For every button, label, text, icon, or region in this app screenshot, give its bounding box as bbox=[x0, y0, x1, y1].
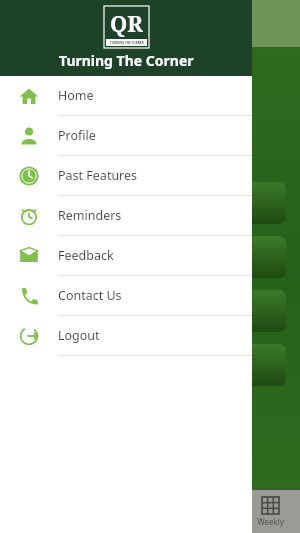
staticText: QR bbox=[110, 8, 143, 38]
staticText: Home bbox=[58, 87, 94, 104]
staticText: Logout bbox=[58, 327, 100, 344]
button[interactable] bbox=[14, 344, 286, 386]
staticText: Past Features bbox=[58, 167, 138, 184]
staticText: Reminders bbox=[58, 207, 122, 224]
staticText: Turning The Corner bbox=[59, 51, 194, 70]
button[interactable] bbox=[14, 290, 286, 332]
button[interactable] bbox=[14, 182, 286, 224]
staticText: Weekly bbox=[257, 516, 284, 527]
staticText: TURNING THE CORNER bbox=[110, 41, 144, 45]
button[interactable]: Contact Us bbox=[0, 276, 252, 316]
other: Weekly bbox=[262, 497, 279, 514]
button[interactable]: Feedback bbox=[0, 236, 252, 276]
button[interactable]: Weekly bbox=[240, 490, 300, 533]
button[interactable]: Logout bbox=[0, 316, 252, 356]
button[interactable]: Home bbox=[0, 76, 252, 116]
staticText: Contact Us bbox=[58, 287, 122, 304]
button[interactable]: Reminders bbox=[0, 196, 252, 236]
button[interactable]: Past Features bbox=[0, 156, 252, 196]
button[interactable] bbox=[14, 236, 286, 278]
button[interactable]: Profile bbox=[0, 116, 252, 156]
staticText: Profile bbox=[58, 127, 96, 144]
staticText: Feedback bbox=[58, 247, 114, 264]
